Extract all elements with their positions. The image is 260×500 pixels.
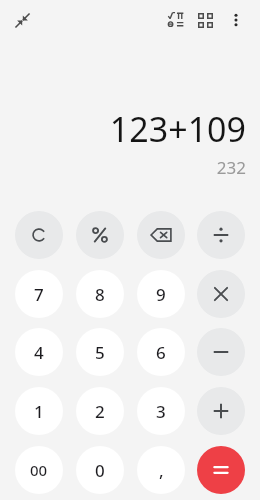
button[interactable]: 5 (76, 328, 124, 376)
button[interactable]: 6 (137, 328, 185, 376)
staticText: 8 (95, 283, 105, 306)
staticText: 232 (216, 156, 246, 179)
staticText: 2 (95, 400, 105, 423)
button[interactable]: , (137, 446, 185, 494)
button[interactable]: 0 (76, 446, 124, 494)
button[interactable]: 8 (76, 270, 124, 318)
button[interactable]: 9 (137, 270, 185, 318)
staticText: 4 (34, 341, 44, 364)
staticText: 3 (156, 400, 166, 423)
button[interactable]: Plus (197, 387, 245, 435)
staticText: 7 (34, 283, 44, 306)
staticText: 123+109 (109, 106, 246, 152)
button[interactable]: Keypad layout (191, 6, 219, 34)
button[interactable]: Minus (197, 328, 245, 376)
button[interactable]: Backspace (137, 211, 185, 259)
staticText: 0 (95, 459, 105, 482)
button[interactable]: Multiply (197, 270, 245, 318)
button[interactable]: Divide (197, 211, 245, 259)
button[interactable]: Percent (76, 211, 124, 259)
button[interactable]: Clear (15, 211, 63, 259)
button[interactable]: 00 (15, 446, 63, 494)
button[interactable]: Scientific mode (162, 6, 190, 34)
staticText: 1 (34, 400, 44, 423)
staticText: 5 (95, 341, 105, 364)
button[interactable]: Equals (197, 446, 245, 494)
button[interactable]: 2 (76, 387, 124, 435)
button[interactable]: 1 (15, 387, 63, 435)
staticText: 6 (156, 341, 166, 364)
button[interactable]: 4 (15, 328, 63, 376)
button[interactable]: Collapse (8, 6, 36, 34)
button[interactable]: 3 (137, 387, 185, 435)
button[interactable]: 7 (15, 270, 63, 318)
button[interactable]: More options (222, 6, 250, 34)
staticText: 00 (30, 460, 48, 480)
staticText: 9 (156, 283, 166, 306)
staticText: , (159, 459, 164, 482)
